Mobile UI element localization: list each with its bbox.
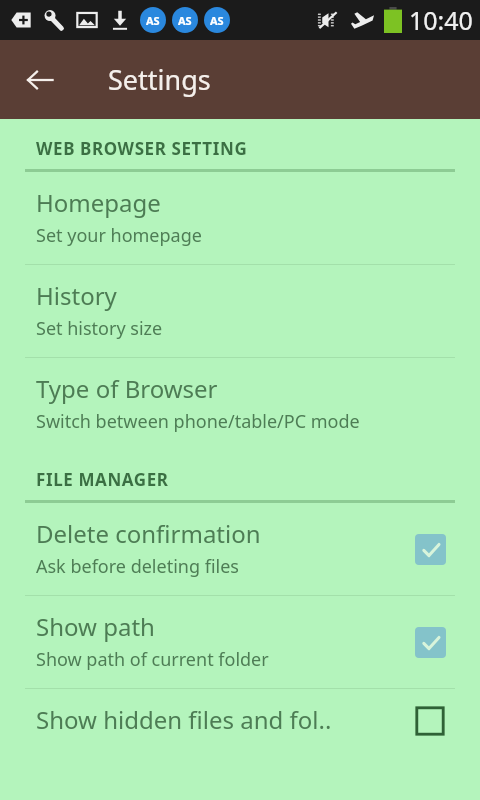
button[interactable]: Delete confirmation — [0, 503, 480, 595]
staticText: WEB BROWSER SETTING — [36, 137, 248, 160]
button[interactable]: Type of Browser — [0, 358, 480, 450]
button[interactable]: Checked, Show path — [410, 622, 450, 662]
staticText: AS — [210, 13, 224, 28]
staticText: Show path — [36, 610, 155, 643]
staticText: FILE MANAGER — [36, 468, 169, 491]
staticText: Settings — [108, 61, 211, 98]
staticText: Ask before deleting files — [36, 554, 239, 579]
button[interactable]: Show hidden files and fol.. — [0, 689, 480, 752]
staticText: Delete confirmation — [36, 517, 261, 550]
staticText: Type of Browser — [36, 372, 218, 405]
staticText: Set your homepage — [36, 223, 202, 248]
staticText: History — [36, 279, 117, 312]
button[interactable]: History — [0, 265, 480, 357]
staticText: 10:40 — [409, 3, 473, 37]
staticText: Set history size — [36, 316, 163, 341]
button: FILE MANAGER — [0, 450, 480, 503]
button[interactable]: Homepage — [0, 172, 480, 264]
staticText: Show hidden files and fol.. — [36, 703, 332, 736]
staticText: Homepage — [36, 186, 161, 219]
staticText: Show path of current folder — [36, 647, 269, 672]
button[interactable]: Back — [16, 56, 64, 104]
staticText: AS — [146, 13, 160, 28]
staticText: AS — [178, 13, 192, 28]
staticText: Switch between phone/table/PC mode — [36, 409, 360, 434]
button[interactable]: Checked, Delete confirmation — [410, 529, 450, 569]
button: WEB BROWSER SETTING — [0, 119, 480, 172]
button[interactable]: Unchecked, Show hidden files and fol.. — [410, 701, 450, 741]
button[interactable]: Show path — [0, 596, 480, 688]
